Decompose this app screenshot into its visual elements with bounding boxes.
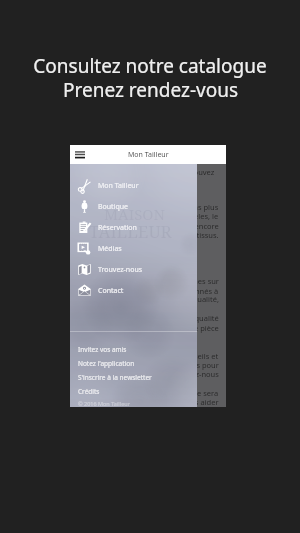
button[interactable]: S'inscrire à la newsletter bbox=[78, 370, 197, 384]
button[interactable]: Contact bbox=[70, 280, 197, 301]
button[interactable]: Boutique bbox=[70, 196, 197, 217]
staticText: Invitez vos amis bbox=[78, 345, 127, 354]
button[interactable]: Trouvez-nous bbox=[70, 259, 197, 280]
staticText: Contact bbox=[98, 286, 124, 296]
button[interactable]: Mon Tailleur bbox=[70, 175, 197, 196]
staticText: Consultez notre catalogue bbox=[33, 53, 267, 79]
button[interactable]: Open navigation drawer bbox=[73, 148, 86, 161]
staticText: Trouvez-nous bbox=[98, 265, 143, 275]
staticText: Bienvenue dans notre univers. Retrouvez … bbox=[70, 167, 219, 177]
staticText: Nos costumes sur bbox=[156, 276, 219, 286]
staticText: Réservation bbox=[98, 223, 137, 233]
staticText: sur chaque pièce bbox=[159, 323, 219, 333]
staticText: Médias bbox=[98, 244, 122, 254]
staticText: la main, avec qualité, bbox=[145, 294, 219, 304]
staticText: © 2016 Mon Tailleur bbox=[78, 400, 130, 407]
staticText: choix sera encore bbox=[157, 221, 219, 231]
staticText: Un soin de qualité bbox=[155, 313, 219, 323]
staticText: Des conseils et bbox=[166, 351, 219, 361]
staticText: Notez l'application bbox=[78, 359, 135, 368]
staticText: Crédits bbox=[78, 387, 100, 396]
staticText: ravie de vous aider bbox=[152, 397, 219, 407]
staticText: Mon Tailleur bbox=[98, 181, 139, 191]
button[interactable]: Médias bbox=[70, 238, 197, 259]
button[interactable]: Crédits bbox=[78, 384, 197, 398]
staticText: mesure sont façonnés à bbox=[134, 286, 219, 296]
staticText: Mon Tailleur bbox=[128, 150, 169, 160]
button[interactable]: Réservation bbox=[70, 217, 197, 238]
staticText: plus large en tissus. bbox=[149, 230, 219, 240]
button[interactable]: Invitez vos amis bbox=[78, 342, 197, 356]
staticText: MAISON bbox=[104, 204, 165, 224]
button[interactable]: Notez l'application bbox=[78, 356, 197, 370]
staticText: de 3000 modèles, le bbox=[148, 211, 219, 221]
staticText: Boutique bbox=[98, 202, 129, 212]
staticText: Prenez rendez-vous bbox=[63, 77, 238, 103]
staticText: des idées pour bbox=[167, 360, 219, 370]
staticText: TAILLEUR bbox=[89, 220, 172, 243]
staticText: Notre équipe sera bbox=[155, 388, 219, 398]
staticText: Nous vous proposons plus bbox=[125, 202, 219, 212]
staticText: sur vous. Suivez-nous bbox=[143, 369, 219, 379]
staticText: S'inscrire à la newsletter bbox=[78, 373, 152, 382]
